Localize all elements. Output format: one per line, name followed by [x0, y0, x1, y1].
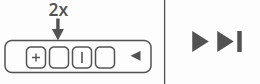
button[interactable]: Add — [26, 47, 45, 68]
button[interactable]: Skip forward — [192, 31, 242, 52]
button[interactable]: Rewind — [130, 51, 140, 61]
button[interactable]: Step two — [49, 47, 68, 68]
button[interactable]: Marker — [72, 47, 91, 68]
button[interactable]: Step four — [95, 47, 114, 68]
staticText: 2x — [48, 0, 68, 21]
